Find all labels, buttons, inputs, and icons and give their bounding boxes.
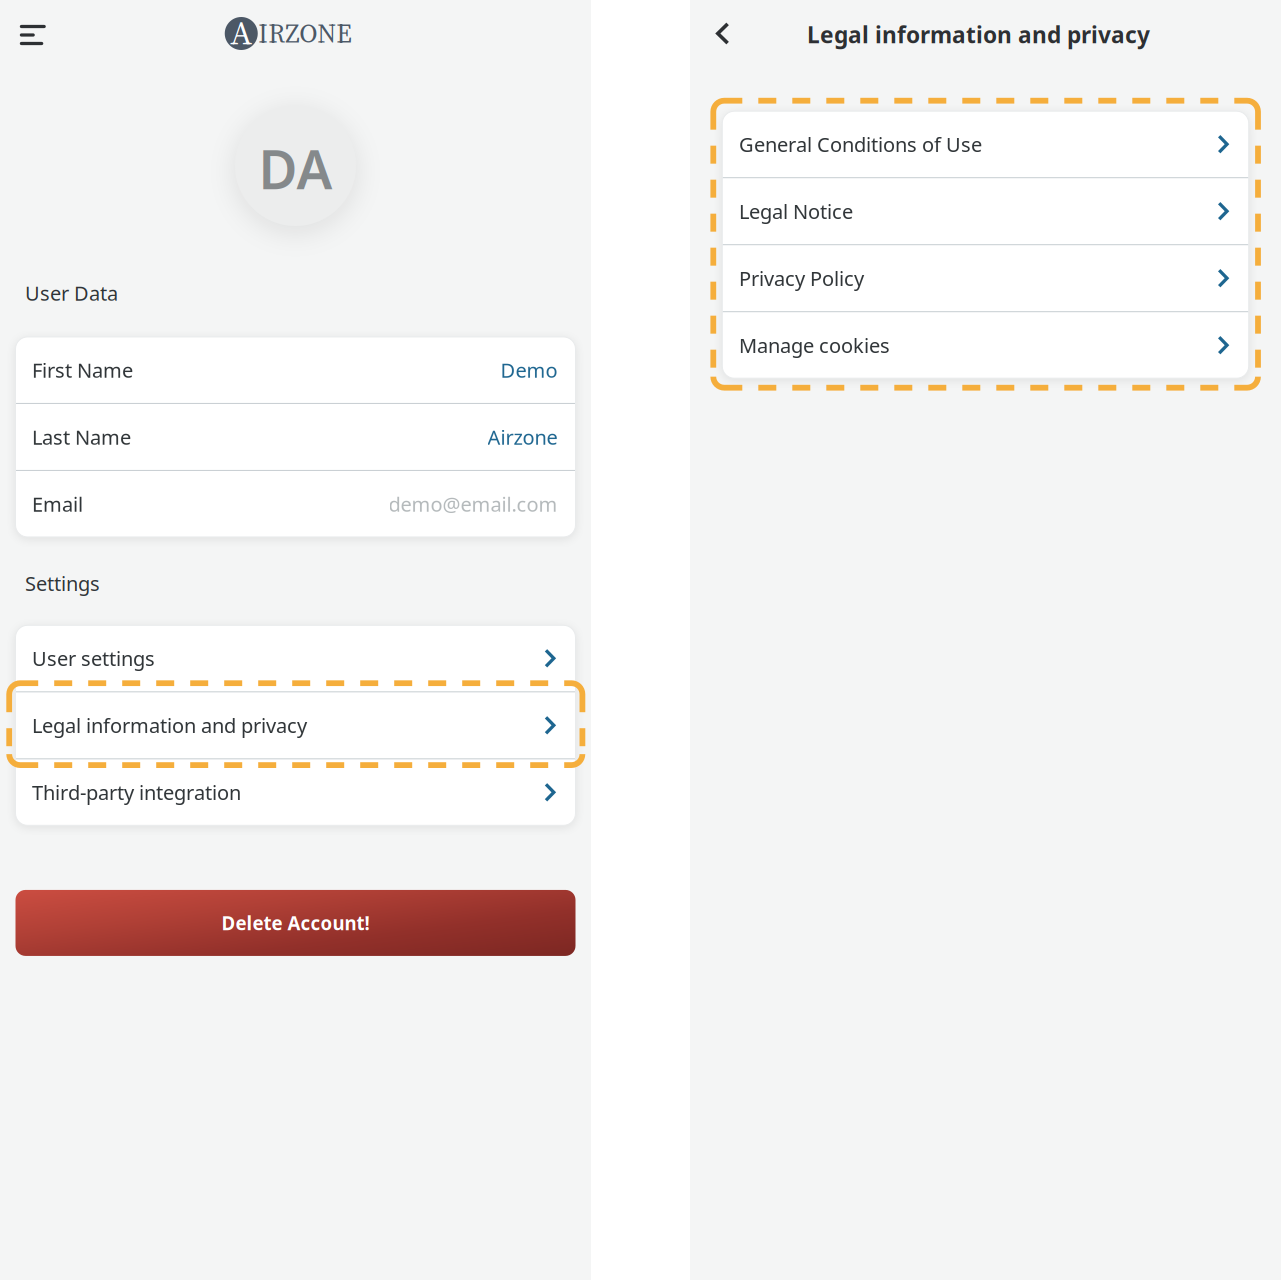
button[interactable]: Privacy Policy: [722, 245, 1249, 311]
staticText: Last Name: [32, 424, 131, 450]
button[interactable]: Legal information and privacy: [15, 692, 575, 758]
button[interactable]: Manage cookies: [722, 312, 1249, 378]
button[interactable]: Delete Account!: [15, 890, 575, 956]
staticText: Third-party integration: [32, 779, 241, 806]
staticText: First Name: [32, 357, 133, 383]
staticText: DA: [258, 133, 332, 204]
staticText: User Data: [25, 280, 118, 306]
staticText: Email: [32, 491, 83, 517]
staticText: demo@email.com: [388, 491, 557, 517]
staticText: Legal Notice: [739, 198, 853, 224]
staticText: Manage cookies: [739, 332, 890, 358]
button[interactable]: General Conditions of Use: [722, 111, 1249, 177]
staticText: Legal information and privacy: [807, 19, 1150, 49]
button[interactable]: Third-party integration: [15, 759, 575, 825]
staticText: Delete Account!: [221, 910, 369, 935]
staticText: General Conditions of Use: [739, 131, 982, 157]
staticText: A: [230, 10, 252, 55]
button[interactable]: Back: [690, 12, 745, 55]
button[interactable]: Legal Notice: [722, 178, 1249, 244]
button[interactable]: Menu: [0, 12, 60, 54]
staticText: Privacy Policy: [739, 265, 864, 291]
button[interactable]: User settings: [15, 625, 575, 691]
staticText: User settings: [32, 645, 155, 672]
staticText: Demo: [500, 357, 557, 383]
staticText: Settings: [25, 570, 100, 597]
staticText: IRZONE: [258, 16, 352, 51]
staticText: Legal information and privacy: [32, 712, 307, 739]
staticText: Airzone: [487, 424, 557, 450]
